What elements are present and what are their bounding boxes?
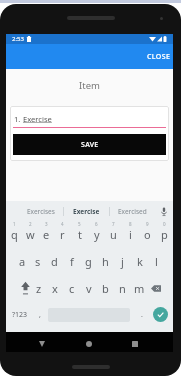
- staticText: 7: [112, 221, 115, 227]
- button[interactable]: Exercised: [110, 201, 155, 221]
- button[interactable]: 8: [122, 225, 139, 243]
- staticText: c: [69, 281, 75, 296]
- staticText: a: [19, 254, 26, 269]
- staticText: 1.: [14, 114, 23, 124]
- staticText: 4: [61, 221, 64, 227]
- button[interactable]: 4: [54, 225, 71, 243]
- staticText: e: [43, 227, 50, 242]
- button[interactable]: z: [31, 279, 47, 297]
- button[interactable]: 2: [22, 225, 38, 243]
- staticText: k: [137, 254, 143, 269]
- staticText: h: [102, 254, 109, 269]
- staticText: 3: [45, 221, 48, 227]
- staticText: Exercised: [118, 207, 147, 216]
- button[interactable]: s: [30, 252, 46, 270]
- button[interactable]: ?123: [9, 306, 31, 324]
- staticText: g: [85, 254, 92, 269]
- button[interactable]: f: [63, 252, 80, 270]
- staticText: i: [129, 227, 132, 242]
- button[interactable]: 3: [38, 225, 54, 243]
- staticText: q: [11, 227, 18, 242]
- staticText: x: [52, 281, 58, 296]
- button[interactable]: Exercises: [18, 201, 63, 221]
- button[interactable]: ,: [34, 306, 46, 324]
- button[interactable]: Exercise: [64, 201, 109, 221]
- staticText: Item: [79, 79, 100, 92]
- staticText: n: [119, 281, 126, 296]
- staticText: w: [26, 227, 35, 242]
- staticText: CLOSE: [147, 52, 171, 62]
- staticText: v: [86, 281, 92, 296]
- staticText: b: [102, 281, 109, 296]
- staticText: y: [94, 227, 100, 242]
- button[interactable]: c: [63, 279, 80, 297]
- staticText: 5: [78, 221, 81, 227]
- staticText: Exercise: [23, 114, 52, 124]
- staticText: ,: [39, 310, 41, 320]
- staticText: r: [60, 227, 65, 242]
- staticText: u: [110, 227, 117, 242]
- staticText: t: [78, 227, 82, 242]
- staticText: 9: [146, 221, 149, 227]
- button[interactable]: 9: [139, 225, 156, 243]
- button[interactable]: l: [148, 252, 165, 270]
- staticText: l: [155, 254, 158, 269]
- button[interactable]: n: [114, 279, 131, 297]
- button[interactable]: Backspace: [148, 279, 164, 297]
- staticText: 2:53: [12, 35, 24, 43]
- button[interactable]: k: [131, 252, 148, 270]
- button[interactable]: 1: [6, 225, 22, 243]
- staticText: SAVE: [81, 140, 99, 150]
- button[interactable]: j: [114, 252, 131, 270]
- staticText: 0: [163, 221, 166, 227]
- button[interactable]: SAVE: [13, 134, 166, 155]
- button[interactable]: 6: [88, 225, 105, 243]
- button[interactable]: b: [97, 279, 114, 297]
- staticText: f: [70, 254, 74, 269]
- button[interactable]: d: [46, 252, 63, 270]
- staticText: ?123: [12, 310, 28, 320]
- button[interactable]: h: [97, 252, 114, 270]
- staticText: 2: [29, 221, 32, 227]
- button[interactable]: Voice input: [155, 201, 173, 221]
- staticText: z: [36, 281, 42, 296]
- button[interactable]: a: [14, 252, 30, 270]
- staticText: Exercises: [27, 207, 55, 216]
- button[interactable]: Done: [153, 307, 168, 322]
- button[interactable]: Back: [33, 335, 51, 353]
- button[interactable]: Shift: [18, 279, 32, 297]
- button[interactable]: .: [136, 306, 148, 324]
- button[interactable]: CLOSE: [147, 52, 173, 62]
- staticText: s: [35, 254, 41, 269]
- staticText: o: [144, 227, 151, 242]
- staticText: d: [51, 254, 58, 269]
- button[interactable]: v: [80, 279, 97, 297]
- button[interactable]: 5: [71, 225, 88, 243]
- staticText: Exercise: [73, 207, 100, 216]
- button[interactable]: g: [80, 252, 97, 270]
- button[interactable]: 0: [156, 225, 173, 243]
- button[interactable]: Recents: [126, 335, 144, 353]
- staticText: m: [134, 281, 145, 296]
- button[interactable]: Home: [80, 335, 98, 353]
- staticText: p: [161, 227, 168, 242]
- button[interactable]: x: [47, 279, 63, 297]
- staticText: 8: [129, 221, 132, 227]
- button[interactable]: 7: [105, 225, 122, 243]
- staticText: .: [141, 310, 143, 320]
- staticText: 6: [95, 221, 98, 227]
- staticText: j: [121, 254, 124, 269]
- staticText: 1: [13, 221, 16, 227]
- button[interactable]: m: [131, 279, 148, 297]
